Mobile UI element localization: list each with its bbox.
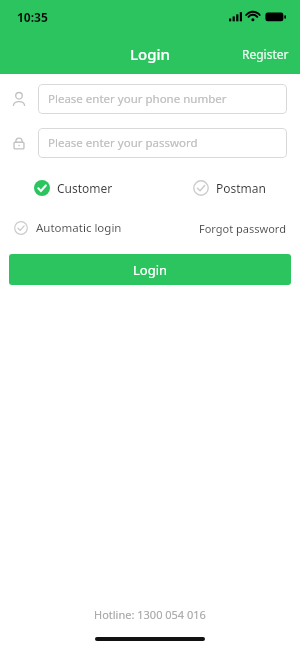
- staticText: Customer: [57, 180, 113, 196]
- staticText: Register: [242, 46, 289, 62]
- button[interactable]: Please enter your phone number: [38, 84, 287, 114]
- button[interactable]: Postman: [193, 180, 266, 196]
- button[interactable]: Please enter your password: [38, 128, 287, 158]
- staticText: Please enter your password: [48, 135, 198, 151]
- button[interactable]: Login: [9, 254, 291, 285]
- button[interactable]: Forgot password: [199, 221, 286, 236]
- staticText: Postman: [216, 180, 266, 196]
- staticText: Automatic login: [36, 220, 122, 236]
- staticText: Hotline: 1300 054 016: [94, 607, 206, 622]
- other: User: [11, 91, 27, 107]
- button[interactable]: Automatic login: [14, 220, 122, 236]
- other: Password: [11, 135, 27, 151]
- button[interactable]: Customer: [34, 180, 113, 196]
- staticText: Forgot password: [199, 221, 286, 236]
- staticText: 10:35: [17, 9, 48, 25]
- button[interactable]: Register: [231, 37, 300, 71]
- staticText: Login: [130, 44, 170, 64]
- staticText: Please enter your phone number: [48, 91, 227, 107]
- staticText: Login: [133, 261, 168, 279]
